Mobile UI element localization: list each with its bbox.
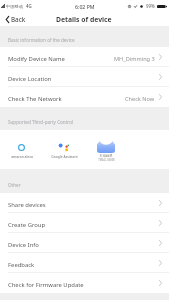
staticText: Details of device <box>56 15 112 24</box>
staticText: Supported Third-party Control <box>8 119 74 125</box>
staticText: Device Info <box>8 241 39 249</box>
button[interactable]: Modify Device Name <box>0 47 169 67</box>
button[interactable]: Feedback <box>0 253 169 273</box>
staticText: Share devices <box>8 201 46 209</box>
staticText: 中国移动 <box>6 4 24 9</box>
button[interactable]: Create Group <box>0 213 169 233</box>
staticText: Create Group <box>8 221 46 229</box>
button[interactable]: Google Assistant <box>43 130 85 169</box>
button[interactable]: 天猫精灵 <box>85 130 127 169</box>
staticText: 4G <box>26 3 32 9</box>
staticText: Basic information of the device <box>8 37 75 43</box>
button[interactable]: Share devices <box>0 193 169 213</box>
staticText: 天猫精灵 <box>99 154 113 158</box>
staticText: Feedback <box>8 261 35 269</box>
staticText: 99% <box>146 3 155 9</box>
button[interactable]: Device Location <box>0 67 169 87</box>
staticText: Google Assistant <box>51 154 78 159</box>
button[interactable]: Back <box>0 12 31 26</box>
staticText: Other <box>8 182 21 188</box>
button[interactable]: amazon alexa <box>0 130 43 169</box>
staticText: Back <box>11 15 26 24</box>
staticText: 6:02 PM <box>75 3 95 10</box>
staticText: amazon alexa <box>11 154 33 159</box>
staticText: Check Now <box>125 95 155 103</box>
button[interactable]: Check for Firmware Update <box>0 273 169 293</box>
staticText: Check for Firmware Update <box>8 281 84 289</box>
staticText: TMALL GENIE <box>98 158 115 162</box>
staticText: Modify Device Name <box>8 55 65 63</box>
button[interactable]: Device Info <box>0 233 169 253</box>
staticText: Check The Network <box>8 95 62 103</box>
button[interactable]: Check The Network <box>0 87 169 107</box>
staticText: MH_Dimming 3 <box>114 55 155 63</box>
staticText: Device Location <box>8 75 52 83</box>
